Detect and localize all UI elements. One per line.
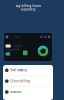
staticText: accurately <box>21 8 35 11</box>
staticText: Log billing hours <box>15 4 40 8</box>
button[interactable]: Time tracking <box>3 65 53 75</box>
staticText: Client billing <box>10 79 30 83</box>
button[interactable]: Invoices <box>3 87 53 97</box>
staticText: Time tracking <box>10 68 27 72</box>
button[interactable]: Client billing <box>3 76 53 86</box>
staticText: Invoices <box>10 90 21 94</box>
